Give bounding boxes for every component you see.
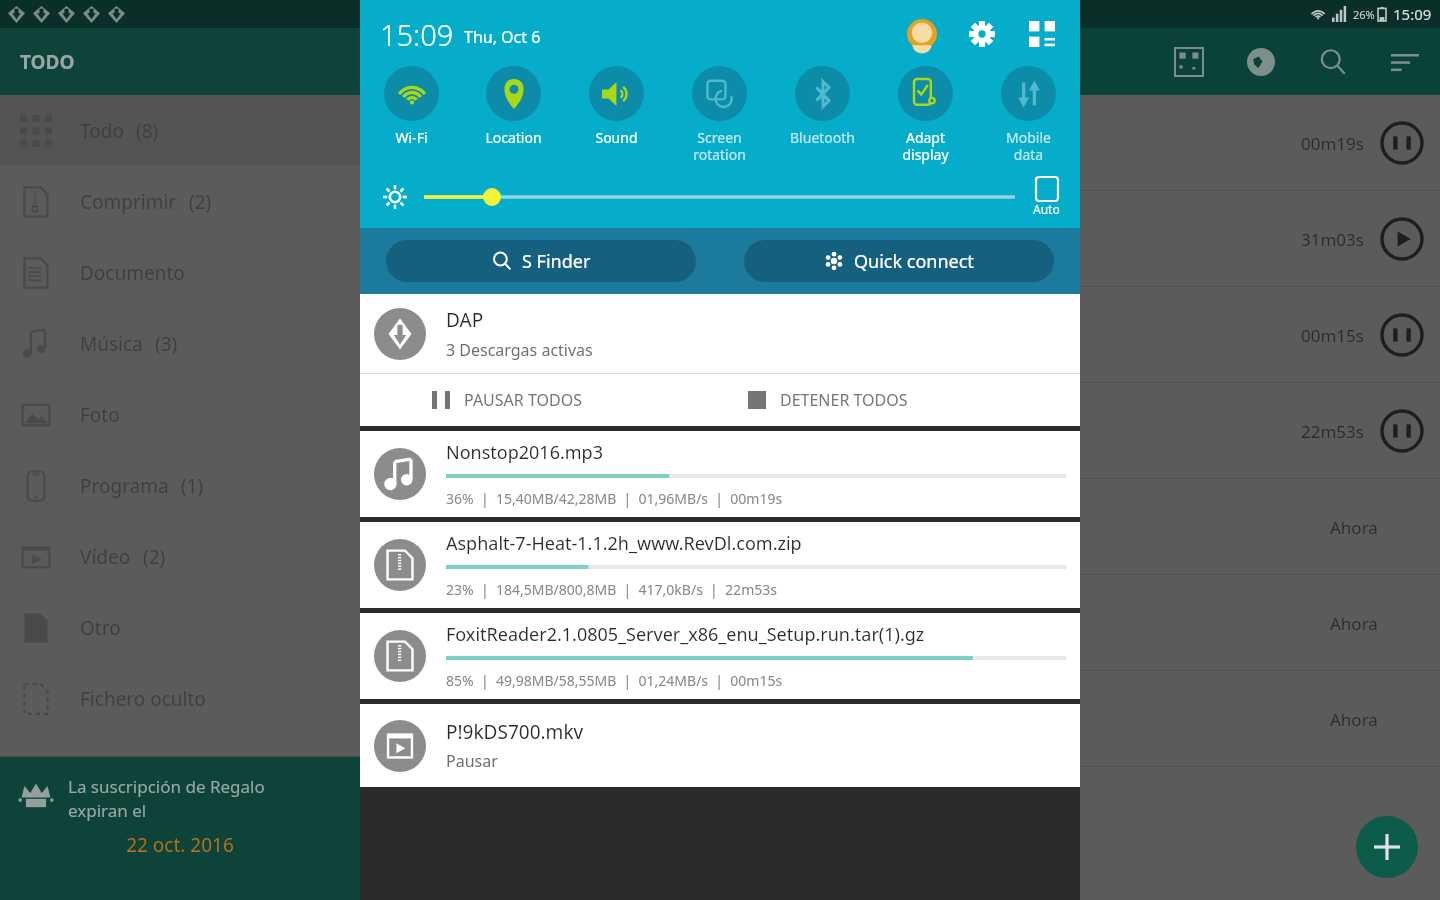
button[interactable]: Edit quick settings [1022,14,1062,54]
staticText: 00m15s [1301,324,1364,347]
staticText: Mobile data [1006,128,1051,164]
button[interactable]: La suscripción de Regalo expiran el [0,757,360,900]
staticText: Fichero oculto [80,686,206,712]
button[interactable] [424,184,1015,210]
staticText: 26% [1353,7,1375,22]
staticText: Bluetooth [790,128,855,147]
button[interactable]: Bluetooth [771,64,874,149]
staticText: TODO [20,49,75,75]
button[interactable]: 00m15s [0,287,1440,383]
button[interactable]: Pause [1378,119,1426,167]
button[interactable]: Sound [565,64,668,149]
staticText: 15:09 [1393,4,1432,24]
button[interactable]: Mobile data [977,64,1080,166]
button[interactable]: Música [0,308,360,379]
staticText: Ahora [1330,612,1378,635]
button[interactable]: S Finder [386,240,696,282]
staticText: Ahora [1330,516,1378,539]
staticText: Otro [80,615,121,641]
staticText: Vídeo [80,544,131,570]
staticText: DAP [446,307,484,333]
button[interactable]: DAP [360,294,1080,373]
button[interactable]: DETENER TODOS [720,374,1080,426]
staticText: 3 Descargas activas [446,339,593,361]
button[interactable]: Resume [1378,215,1426,263]
staticText: Todo [80,118,124,144]
button[interactable]: Auto [1031,175,1062,219]
button[interactable]: Otro [0,592,360,663]
button[interactable]: User profile [902,14,942,54]
staticText: 22m53s [1301,420,1364,443]
button[interactable]: Quick connect [744,240,1054,282]
button[interactable]: 22m53s [0,383,1440,479]
staticText: (3) [155,331,178,357]
button[interactable]: Search [1312,41,1354,83]
staticText: Quick connect [854,249,974,274]
staticText: (8) [136,118,159,144]
staticText: Pausar [446,750,498,772]
staticText: Auto [1033,201,1060,217]
staticText: PAUSAR TODOS [464,389,582,411]
button[interactable]: Pause [1378,311,1426,359]
staticText: Thu, Oct 6 [464,26,541,48]
button[interactable]: P!9kDS700.mkv [360,704,1080,787]
button[interactable]: 00m19s [0,95,1440,191]
staticText: Programa [80,473,169,499]
staticText: 22 oct. 2016 [0,832,360,858]
staticText: (1) [181,473,204,499]
button[interactable]: Asphalt-7-Heat-1.1.2h_www.RevDl.com.zip [360,522,1080,608]
staticText: Location [485,128,542,147]
staticText: Adapt display [902,128,949,164]
button[interactable]: Settings [962,14,1002,54]
staticText: 15:09 [380,15,454,54]
staticText: 00m19s [1301,132,1364,155]
button[interactable]: Vídeo [0,521,360,592]
staticText: 85% | 49,98MB/58,55MB | 01,24MB/s | 00m1… [446,671,783,690]
staticText: P!9kDS700.mkv [446,719,584,745]
button[interactable]: Programa [0,450,360,521]
button[interactable]: Screen rotation [668,64,771,166]
staticText: Wi-Fi [395,128,428,147]
button[interactable]: Fichero oculto [0,663,360,734]
staticText: 23% | 184,5MB/800,8MB | 417,0kB/s | 22m5… [446,580,777,599]
button[interactable]: Scan QR code [1168,41,1210,83]
staticText: 36% | 15,40MB/42,28MB | 01,96MB/s | 00m1… [446,489,783,508]
staticText: FoxitReader2.1.0805_Server_x86_enu_Setup… [446,622,925,647]
staticText: Nonstop2016.mp3 [446,440,603,465]
staticText: Foto [80,402,120,428]
staticText: Asphalt-7-Heat-1.1.2h_www.RevDl.com.zip [446,531,802,556]
button[interactable]: Ahora [0,479,1440,575]
staticText: La suscripción de Regalo expiran el [68,775,265,822]
button[interactable]: FoxitReader2.1.0805_Server_x86_enu_Setup… [360,613,1080,699]
button[interactable]: Wi-Fi [360,64,462,149]
button[interactable]: Location [462,64,565,149]
button[interactable]: Documento [0,237,360,308]
button[interactable]: Add download [1356,816,1418,878]
staticText: Screen rotation [693,128,746,164]
button[interactable]: Comprimir [0,166,360,237]
button[interactable]: Ahora [0,671,1440,767]
staticText: (2) [143,544,166,570]
button[interactable]: Adapt display [874,64,977,166]
staticText: Música [80,331,143,357]
button[interactable]: Browser [1240,41,1282,83]
staticText: DETENER TODOS [780,389,908,411]
button[interactable]: PAUSAR TODOS [360,374,720,426]
staticText: 31m03s [1301,228,1364,251]
staticText: Sound [595,128,638,147]
button[interactable]: Pause [1378,407,1426,455]
button[interactable]: Sort [1384,41,1426,83]
staticText: Documento [80,260,185,286]
staticText: (2) [189,189,212,215]
staticText: S Finder [522,249,591,274]
staticText: Comprimir [80,189,177,215]
button[interactable]: Nonstop2016.mp3 [360,431,1080,517]
button[interactable]: 31m03s [0,191,1440,287]
staticText: Ahora [1330,708,1378,731]
button[interactable]: Ahora [0,575,1440,671]
